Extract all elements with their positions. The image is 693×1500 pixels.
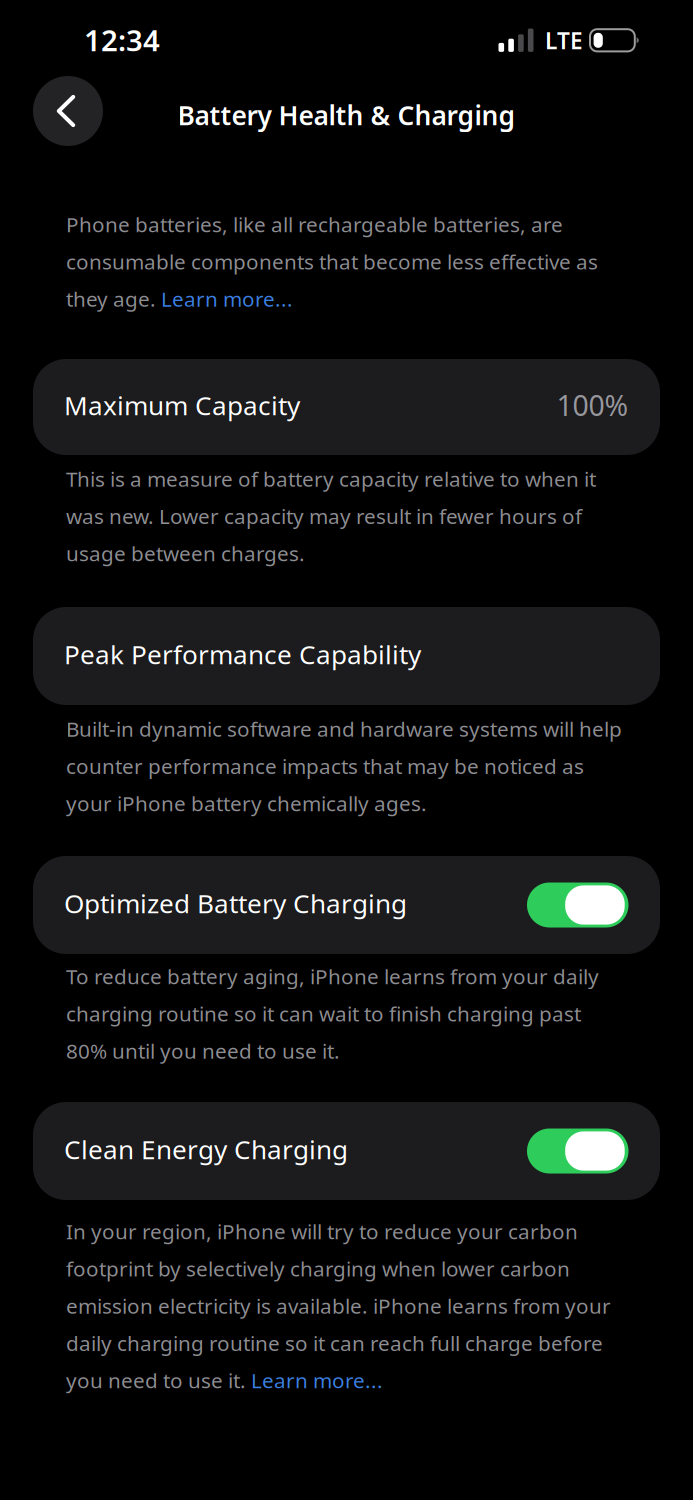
staticText: Learn more... xyxy=(251,1366,383,1394)
staticText: was new. Lower capacity may result in fe… xyxy=(66,502,582,530)
staticText: Maximum Capacity xyxy=(64,387,300,423)
staticText: Built-in dynamic software and hardware s… xyxy=(66,715,622,743)
staticText: charging routine so it can wait to finis… xyxy=(66,999,581,1027)
staticText: usage between charges. xyxy=(66,539,305,567)
staticText: daily charging routine so it can reach f… xyxy=(66,1329,603,1357)
staticText: your iPhone battery chemically ages. xyxy=(66,789,427,817)
staticText: consumable components that become less e… xyxy=(66,247,598,275)
staticText: Learn more... xyxy=(161,285,293,313)
button[interactable]: Optimized Battery Charging xyxy=(33,856,660,954)
button[interactable]: Clean Energy Charging xyxy=(527,1128,628,1173)
staticText: you need to use it. xyxy=(66,1366,251,1394)
button[interactable]: Learn more... xyxy=(161,285,293,313)
staticText: To reduce battery aging, iPhone learns f… xyxy=(66,962,599,990)
button[interactable]: Maximum Capacity xyxy=(33,359,660,455)
button[interactable]: Clean Energy Charging xyxy=(33,1102,660,1200)
button[interactable]: Optimized Battery Charging xyxy=(527,882,628,927)
button[interactable]: Peak Performance Capability xyxy=(33,607,660,705)
staticText: Optimized Battery Charging xyxy=(64,885,407,921)
staticText: 80% until you need to use it. xyxy=(66,1037,340,1065)
button[interactable]: Learn more... xyxy=(251,1366,383,1394)
staticText: Phone batteries, like all rechargeable b… xyxy=(66,210,563,238)
staticText: emission electricity is available. iPhon… xyxy=(66,1292,611,1320)
staticText: In your region, iPhone will try to reduc… xyxy=(66,1217,578,1245)
staticText: This is a measure of battery capacity re… xyxy=(66,465,596,493)
staticText: counter performance impacts that may be … xyxy=(66,752,584,780)
staticText: 100% xyxy=(556,386,628,424)
staticText: LTE xyxy=(545,25,583,56)
staticText: Peak Performance Capability xyxy=(64,636,421,672)
staticText: Battery Health & Charging xyxy=(177,97,515,133)
staticText: Clean Energy Charging xyxy=(64,1131,348,1167)
staticText: footprint by selectively charging when l… xyxy=(66,1254,570,1282)
staticText: 12:34 xyxy=(84,20,160,60)
staticText: they age. xyxy=(66,285,161,313)
button[interactable]: Back xyxy=(33,76,103,146)
